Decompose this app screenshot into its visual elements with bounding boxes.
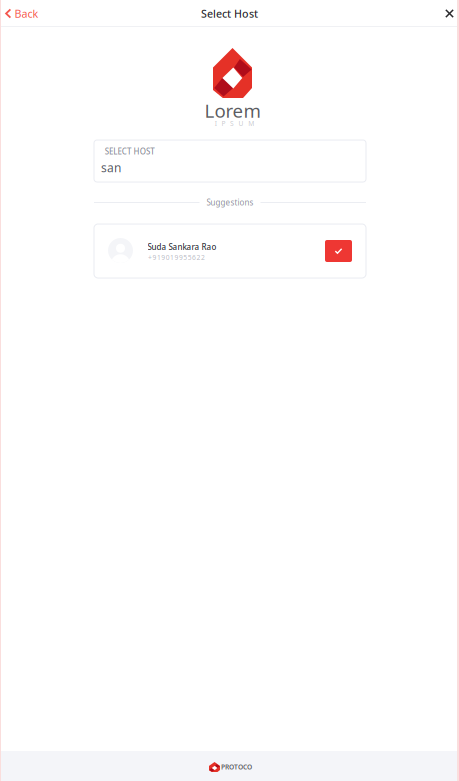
- staticText: Back: [14, 6, 38, 21]
- staticText: san: [101, 159, 121, 175]
- staticText: PROTOCO: [221, 763, 252, 771]
- staticText: Suda Sankara Rao: [147, 242, 216, 252]
- button[interactable]: Back: [1, 0, 42, 28]
- staticText: Lorem: [204, 98, 260, 123]
- button[interactable]: Close: [438, 1, 458, 26]
- staticText: +919019955622: [148, 253, 205, 262]
- button[interactable]: Suda Sankara Rao: [94, 224, 366, 278]
- button[interactable]: SELECT HOST: [94, 140, 366, 182]
- staticText: Select Host: [201, 6, 258, 21]
- staticText: SELECT HOST: [105, 146, 154, 157]
- staticText: Suggestions: [206, 197, 253, 208]
- staticText: I P S U M: [215, 119, 254, 128]
